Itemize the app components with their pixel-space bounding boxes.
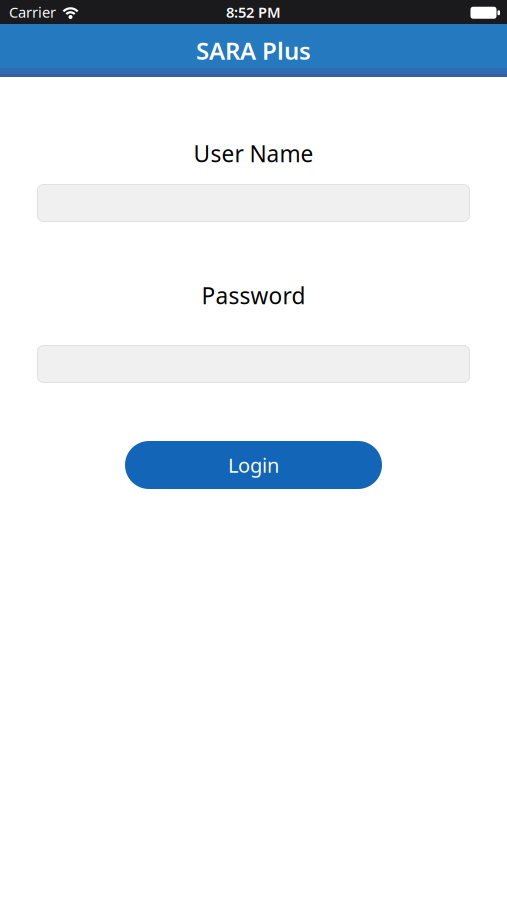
staticText: 8:52 PM [226, 2, 281, 22]
staticText: Carrier [9, 2, 56, 22]
button[interactable]: Login [125, 441, 382, 489]
staticText: Login [228, 452, 279, 478]
staticText: User Name [193, 138, 313, 168]
staticText: SARA Plus [196, 35, 311, 66]
staticText: Password [201, 280, 305, 310]
